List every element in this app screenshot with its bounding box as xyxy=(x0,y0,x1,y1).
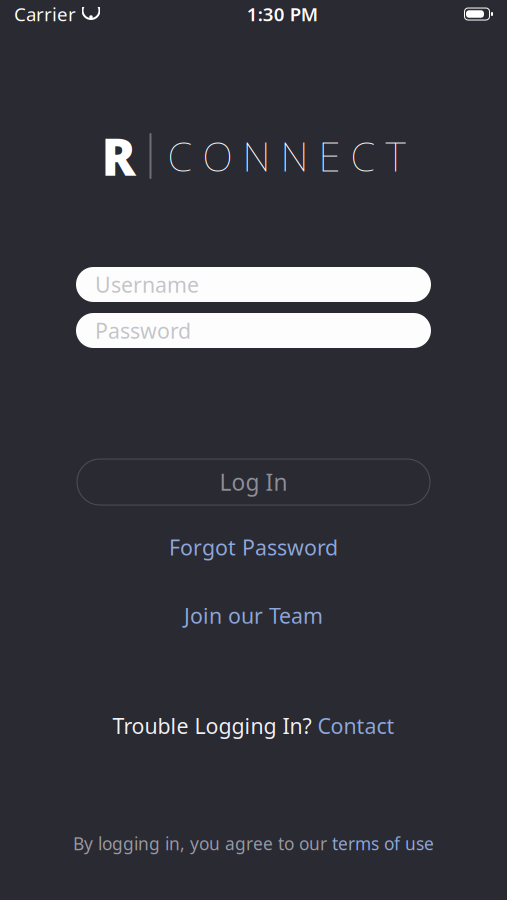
staticText: Trouble Logging In? xyxy=(112,712,311,740)
staticText: Carrier xyxy=(14,2,76,26)
staticText: Username xyxy=(95,270,199,299)
staticText: 1:30 PM xyxy=(247,2,318,26)
staticText: Forgot Password xyxy=(169,533,338,561)
staticText: R xyxy=(101,122,135,190)
staticText: Contact xyxy=(317,712,394,740)
staticText: Join our Team xyxy=(184,601,323,630)
staticText: Log In xyxy=(219,467,287,497)
staticText: C O N N E C T xyxy=(167,129,405,182)
staticText: terms of use xyxy=(332,832,434,855)
staticText: By logging in, you agree to our xyxy=(73,832,327,855)
button[interactable]: Contact xyxy=(317,708,394,744)
button[interactable]: Log In xyxy=(77,459,430,505)
staticText: Password xyxy=(95,316,191,345)
button[interactable]: Forgot Password xyxy=(153,527,354,567)
button[interactable]: Join our Team xyxy=(168,595,339,636)
button[interactable]: terms of use xyxy=(332,829,434,858)
